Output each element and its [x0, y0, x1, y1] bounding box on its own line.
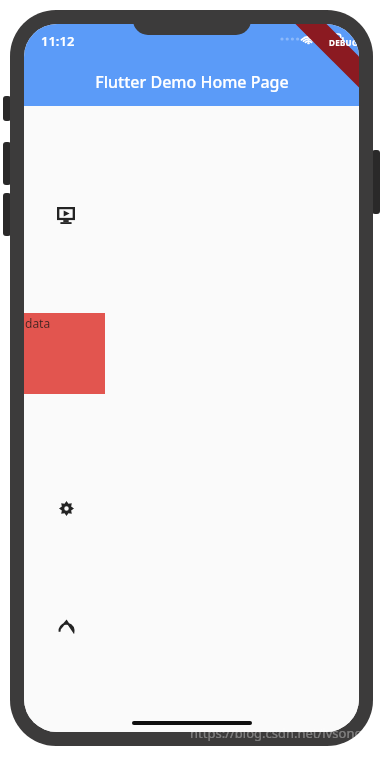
staticText: 11:12	[41, 32, 75, 50]
button[interactable]: Settings	[54, 496, 78, 520]
staticText: Flutter Demo Home Page	[95, 71, 289, 93]
button[interactable]: Cast to display	[54, 203, 78, 227]
staticText: https://blog.csdn.net/lvsonghai	[190, 724, 382, 742]
button[interactable]: data	[24, 313, 105, 394]
staticText: data	[25, 315, 51, 331]
staticText: DEBUG	[329, 37, 358, 48]
button[interactable]: Invert colors	[54, 616, 78, 640]
